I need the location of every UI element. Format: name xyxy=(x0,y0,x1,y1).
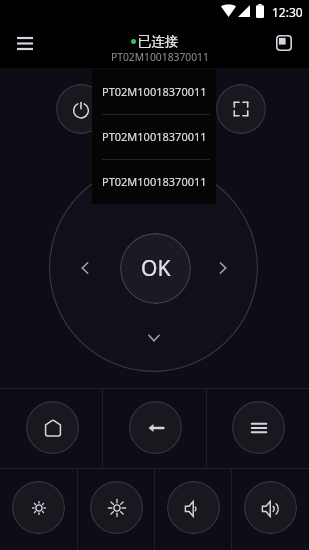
staticText: 已连接 xyxy=(138,33,179,50)
button[interactable]: Left xyxy=(70,253,100,283)
button[interactable]: Down xyxy=(139,323,169,353)
button[interactable]: Brightness up xyxy=(90,481,143,534)
button[interactable]: PT02M10018370011 xyxy=(92,69,216,114)
button[interactable]: Power xyxy=(56,84,106,134)
staticText: 12:30 xyxy=(272,4,303,20)
button[interactable]: Volume up xyxy=(244,481,297,534)
button[interactable]: PT02M10018370011 xyxy=(92,159,216,204)
button[interactable]: Fullscreen xyxy=(216,84,266,134)
button[interactable]: Home xyxy=(26,401,79,454)
button[interactable]: Device xyxy=(266,25,302,61)
staticText: PT02M10018370011 xyxy=(102,174,207,189)
staticText: PT02M10018370011 xyxy=(111,50,209,64)
staticText: PT02M10018370011 xyxy=(102,84,207,99)
button[interactable]: Menu xyxy=(7,25,43,61)
button[interactable]: Brightness down xyxy=(12,481,65,534)
button[interactable]: PT02M10018370011 xyxy=(92,114,216,159)
button[interactable]: Back xyxy=(129,401,182,454)
staticText: OK xyxy=(141,254,171,283)
button[interactable]: Right xyxy=(208,253,238,283)
button[interactable]: Up xyxy=(139,184,169,214)
button[interactable]: OK xyxy=(120,233,191,304)
button[interactable]: Menu xyxy=(232,401,285,454)
staticText: PT02M10018370011 xyxy=(102,129,207,144)
button[interactable]: Volume down xyxy=(167,481,220,534)
